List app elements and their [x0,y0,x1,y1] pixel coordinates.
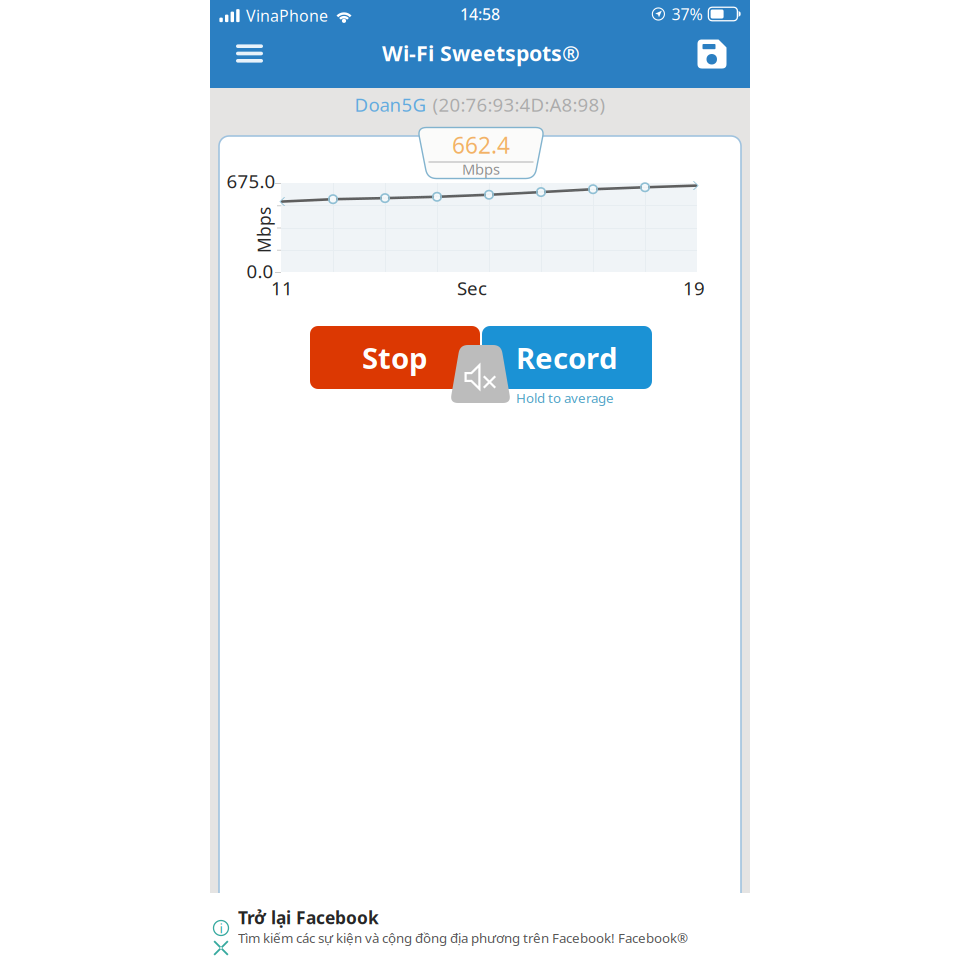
staticText: 0.0 [246,259,273,283]
button[interactable]: Ad information [211,918,231,938]
button[interactable]: Stop [310,326,480,389]
staticText: 11 [271,276,293,300]
staticText: Hold to average [516,389,614,407]
staticText: i [219,919,222,937]
button[interactable]: Save [686,30,738,78]
staticText: 37% [671,3,702,25]
button[interactable]: Mute [450,345,511,403]
staticText: Doan5G [354,92,426,117]
staticText: Mbps [241,218,287,241]
button[interactable]: Record [482,326,652,389]
staticText: Wi-Fi Sweetspots® [382,39,580,67]
staticText: Stop [362,338,428,377]
staticText: Trở lại Facebook [238,906,379,929]
staticText: Mbps [462,159,500,179]
staticText: Tìm kiếm các sự kiện và cộng đồng địa ph… [238,929,688,947]
staticText: (20:76:93:4D:A8:98) [432,92,605,117]
button[interactable]: Menu [223,29,275,77]
staticText: VinaPhone [246,5,328,26]
staticText: Record [516,338,618,377]
staticText: 19 [683,276,705,300]
staticText: 662.4 [452,130,510,160]
staticText: Sec [457,276,487,300]
staticText: 675.0 [226,169,275,193]
staticText: 14:58 [460,3,500,25]
button[interactable]: Close ad [211,938,231,958]
